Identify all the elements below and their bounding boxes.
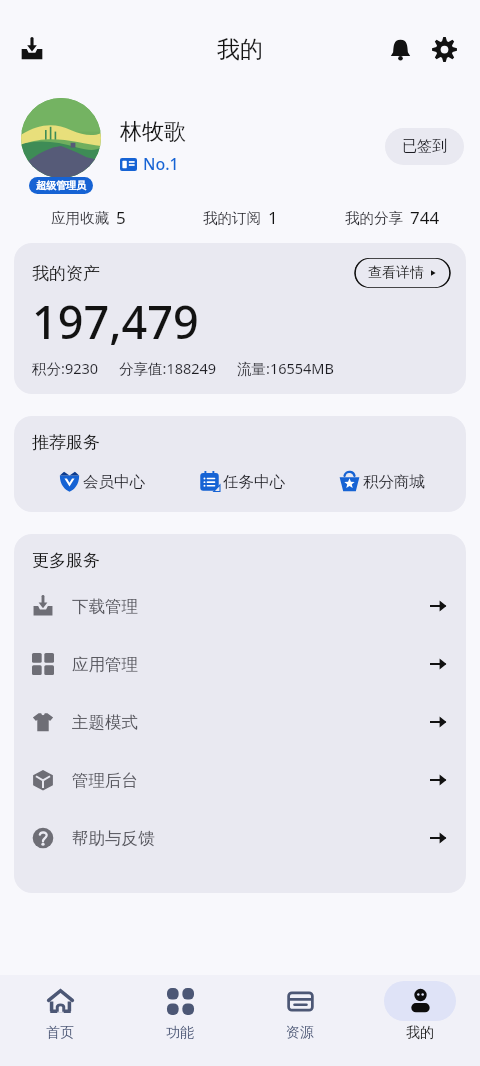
staticText: 更多服务 xyxy=(32,550,100,571)
staticText: 应用收藏 xyxy=(51,209,109,227)
staticText: 流量:16554MB xyxy=(237,358,334,378)
button[interactable]: 首页 xyxy=(0,981,120,1042)
staticText: 积分商城 xyxy=(363,472,425,492)
staticText: No.1 xyxy=(143,153,179,175)
button[interactable]: Notifications xyxy=(378,27,422,71)
button[interactable]: 我的 xyxy=(360,981,480,1042)
button[interactable]: 查看详情 xyxy=(353,257,452,289)
button[interactable]: 会员中心 xyxy=(32,471,172,492)
button[interactable]: 功能 xyxy=(120,981,240,1042)
staticText: 我的资产 xyxy=(32,263,353,284)
button[interactable]: Downloads xyxy=(8,25,56,73)
staticText: 我的订阅 xyxy=(203,209,261,227)
staticText: 主题模式 xyxy=(72,712,428,733)
staticText: 超级管理员 xyxy=(36,179,86,192)
button[interactable]: 我的分享 xyxy=(316,206,468,229)
staticText: 首页 xyxy=(46,1024,74,1042)
button[interactable]: 我的资产 xyxy=(14,243,466,394)
staticText: 资源 xyxy=(286,1024,314,1042)
staticText: 5 xyxy=(116,206,126,229)
staticText: 任务中心 xyxy=(223,472,285,492)
staticText: 我的分享 xyxy=(345,209,403,227)
staticText: 帮助与反馈 xyxy=(72,828,428,849)
button[interactable]: 资源 xyxy=(240,981,360,1042)
staticText: 分享值:188249 xyxy=(119,358,217,378)
staticText: 积分:9230 xyxy=(32,358,99,378)
button[interactable]: 下载管理 xyxy=(14,577,466,635)
staticText: 我的 xyxy=(406,1024,434,1042)
staticText: 应用管理 xyxy=(72,654,428,675)
staticText: 744 xyxy=(410,206,440,229)
button[interactable]: 应用管理 xyxy=(14,635,466,693)
button[interactable]: 任务中心 xyxy=(172,471,312,492)
staticText: 1 xyxy=(268,206,278,229)
staticText: 已签到 xyxy=(402,137,447,156)
staticText: 林牧歌 xyxy=(120,118,186,146)
staticText: 下载管理 xyxy=(72,596,428,617)
button[interactable]: 主题模式 xyxy=(14,693,466,751)
button[interactable]: Avatar xyxy=(21,98,101,178)
staticText: 我的 xyxy=(217,35,263,64)
button[interactable]: 积分商城 xyxy=(312,471,452,492)
button[interactable]: 我的订阅 xyxy=(164,206,316,229)
staticText: 197,479 xyxy=(32,291,199,352)
button[interactable]: 帮助与反馈 xyxy=(14,809,466,867)
staticText: 功能 xyxy=(166,1024,194,1042)
button[interactable]: 应用收藏 xyxy=(12,206,164,229)
button[interactable]: 已签到 xyxy=(385,128,464,165)
staticText: 会员中心 xyxy=(83,472,145,492)
button[interactable]: Settings xyxy=(422,27,466,71)
button[interactable]: 管理后台 xyxy=(14,751,466,809)
staticText: 推荐服务 xyxy=(32,432,100,453)
staticText: 管理后台 xyxy=(72,770,428,791)
staticText: 查看详情 xyxy=(368,264,424,282)
